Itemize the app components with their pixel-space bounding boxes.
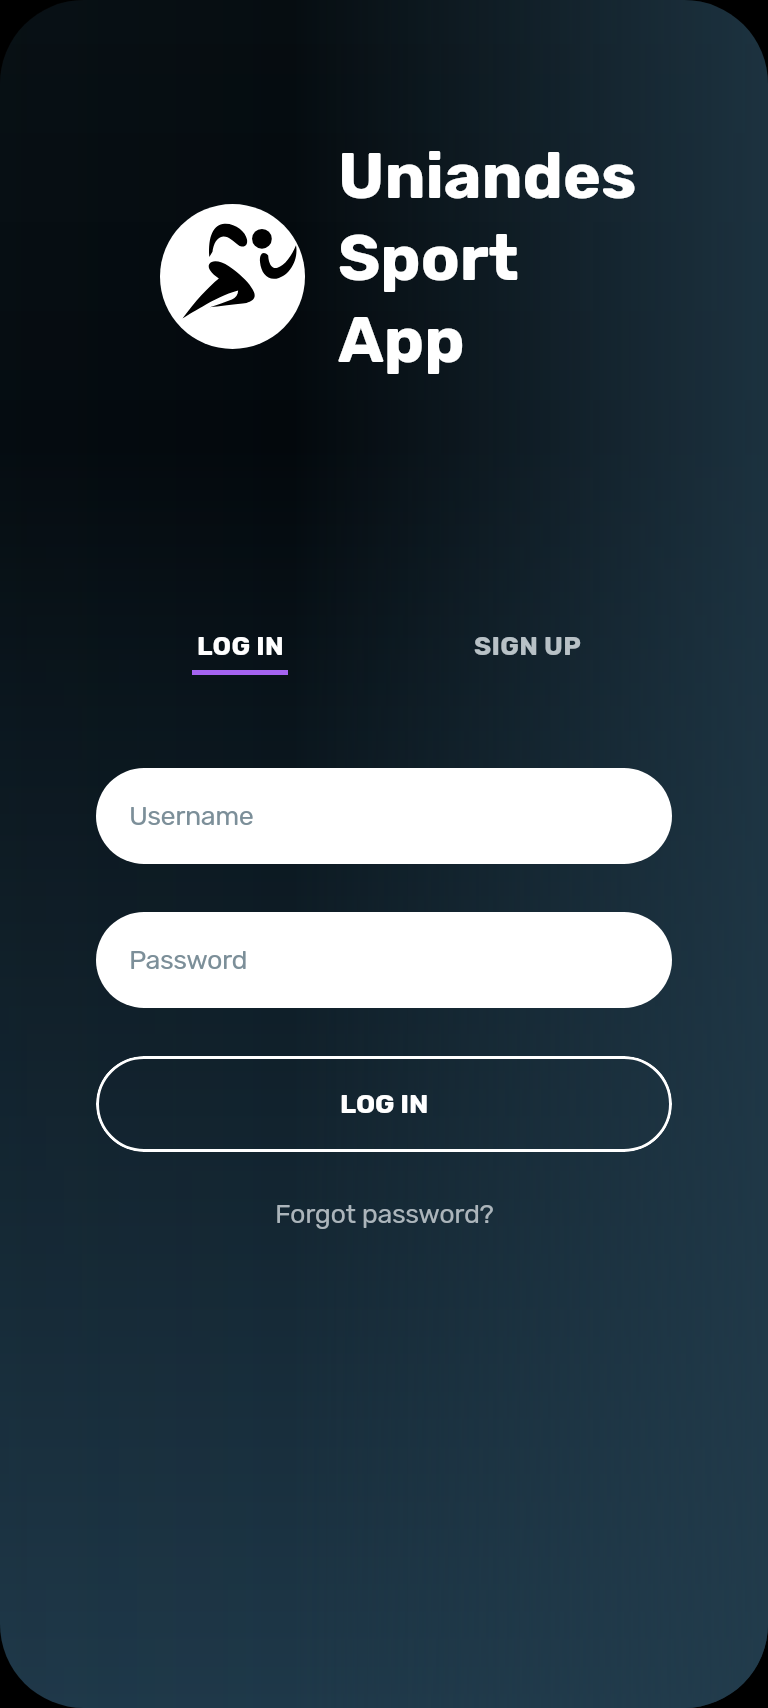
- button[interactable]: Password: [96, 912, 672, 1008]
- staticText: Password: [129, 944, 247, 976]
- button[interactable]: LOG IN: [96, 1056, 672, 1152]
- staticText: Username: [129, 800, 254, 832]
- button[interactable]: Username: [96, 768, 672, 864]
- button[interactable]: LOG IN: [96, 631, 384, 675]
- staticText: SIGN UP: [474, 631, 582, 662]
- button[interactable]: SIGN UP: [384, 631, 672, 670]
- staticText: LOG IN: [340, 1088, 429, 1120]
- button[interactable]: Forgot password?: [263, 1190, 506, 1238]
- staticText: Forgot password?: [275, 1198, 494, 1230]
- staticText: LOG IN: [197, 631, 284, 662]
- staticText: Uniandes Sport App: [338, 138, 637, 378]
